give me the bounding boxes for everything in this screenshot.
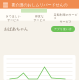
- staticText: サービス: [60, 20, 72, 23]
- staticText: 得意な: [35, 15, 44, 18]
- staticText: 要介護のおしムリバードせんの: [11, 2, 67, 7]
- button[interactable]: 定期利用のサービス: [53, 13, 79, 23]
- button[interactable]: アプリ使い方: [51, 26, 75, 32]
- staticText: きてほしい: [6, 15, 21, 18]
- staticText: おばあちゃん: [4, 26, 28, 31]
- button[interactable]: 得意な: [26, 15, 53, 22]
- staticText: サービス: [7, 18, 19, 22]
- staticText: 定期利用のサービス: [54, 13, 78, 20]
- button[interactable]: きてほしい: [0, 15, 26, 22]
- staticText: サービス: [33, 18, 45, 22]
- button[interactable]: Menu: [2, 0, 9, 9]
- staticText: アプリ使い方: [54, 27, 72, 31]
